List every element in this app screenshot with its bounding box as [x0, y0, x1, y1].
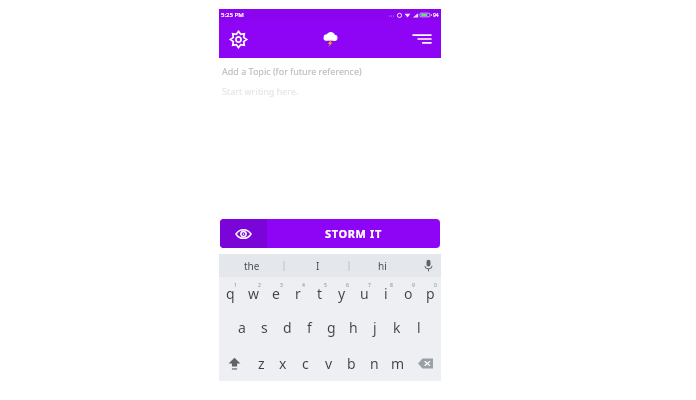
staticText: r [295, 284, 301, 303]
staticText: 2 [258, 282, 261, 289]
button[interactable]: i [375, 277, 397, 309]
button[interactable]: Storm [315, 24, 345, 54]
staticText: the [244, 259, 260, 273]
button[interactable]: Settings [223, 24, 253, 54]
button[interactable]: c [294, 345, 317, 381]
staticText: k [393, 318, 401, 337]
button[interactable]: n [363, 345, 386, 381]
button[interactable]: d [276, 309, 298, 345]
button[interactable]: x [272, 345, 294, 381]
button[interactable]: hi [350, 254, 415, 277]
button[interactable]: t [309, 277, 331, 309]
button[interactable]: Voice input [415, 254, 441, 277]
button[interactable]: Start writing here. [222, 85, 299, 97]
button[interactable]: I [285, 254, 350, 277]
staticText: t [317, 284, 323, 303]
staticText: n [370, 354, 379, 373]
staticText: x [279, 354, 287, 373]
button[interactable]: f [298, 309, 320, 345]
button[interactable]: Shift [219, 345, 250, 381]
staticText: 1 [234, 282, 237, 289]
staticText: e [272, 284, 280, 303]
staticText: 7 [368, 282, 371, 289]
staticText: 8 [390, 282, 393, 289]
staticText: 3 [280, 282, 283, 289]
button[interactable]: the [219, 254, 285, 277]
button[interactable]: a [230, 309, 253, 345]
button[interactable]: m [386, 345, 409, 381]
staticText: p [426, 284, 435, 303]
staticText: 6 [346, 282, 349, 289]
button[interactable]: y [331, 277, 353, 309]
button[interactable]: s [253, 309, 276, 345]
staticText: c [302, 354, 309, 373]
button[interactable]: j [364, 309, 386, 345]
staticText: z [258, 354, 265, 373]
staticText: h [349, 318, 358, 337]
button[interactable]: Add a Topic (for future reference) [222, 65, 362, 77]
button[interactable]: STORM IT [220, 219, 440, 248]
staticText: m [391, 354, 405, 373]
staticText: w [248, 284, 260, 303]
staticText: 0 [434, 282, 437, 289]
staticText: q [226, 284, 235, 303]
staticText: o [404, 284, 413, 303]
button[interactable]: r [287, 277, 309, 309]
staticText: d [283, 318, 292, 337]
staticText: I [316, 259, 320, 273]
button[interactable]: g [320, 309, 342, 345]
button[interactable]: Backspace [409, 345, 441, 381]
button[interactable]: z [250, 345, 272, 381]
staticText: v [325, 354, 333, 373]
staticText: 5 [324, 282, 327, 289]
staticText: u [360, 284, 369, 303]
staticText: g [327, 318, 336, 337]
button[interactable]: Menu [407, 24, 437, 54]
button[interactable]: u [353, 277, 375, 309]
button[interactable]: o [397, 277, 419, 309]
button[interactable]: l [408, 309, 430, 345]
button[interactable]: w [242, 277, 265, 309]
staticText: a [238, 318, 246, 337]
button[interactable]: q [219, 277, 242, 309]
staticText: 5:25 PM [221, 11, 244, 19]
staticText: hi [378, 259, 387, 273]
button[interactable]: b [340, 345, 363, 381]
staticText: 4 [302, 282, 305, 289]
button[interactable]: e [265, 277, 287, 309]
staticText: f [307, 318, 312, 337]
staticText: STORM IT [325, 226, 382, 241]
staticText: 94 [433, 12, 439, 19]
staticText: j [373, 318, 377, 337]
staticText: 9 [412, 282, 415, 289]
staticText: b [347, 354, 356, 373]
button[interactable]: p [419, 277, 441, 309]
staticText: y [338, 284, 346, 303]
button[interactable]: v [317, 345, 340, 381]
button[interactable]: h [342, 309, 364, 345]
staticText: s [261, 318, 268, 337]
staticText: i [384, 284, 388, 303]
staticText: l [417, 318, 421, 337]
button[interactable]: k [386, 309, 408, 345]
